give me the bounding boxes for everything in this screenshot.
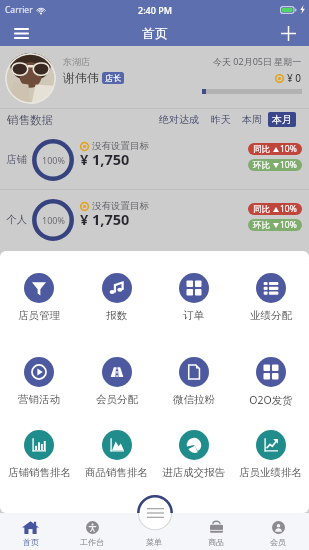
- button[interactable]: 绝对达成: [155, 112, 203, 127]
- button[interactable]: O2O发货: [232, 357, 309, 407]
- staticText: 进店成交报告: [162, 466, 225, 479]
- staticText: 业绩分配: [250, 309, 292, 322]
- staticText: ¥ 1,750: [80, 149, 130, 169]
- staticText: 微信拉粉: [173, 393, 215, 406]
- button[interactable]: 菜单: [123, 513, 185, 550]
- button[interactable]: 同比: [248, 203, 302, 215]
- button[interactable]: 报数: [78, 273, 155, 322]
- staticText: 环比: [253, 220, 270, 231]
- button[interactable]: Menu: [137, 495, 173, 531]
- button[interactable]: 微信拉粉: [155, 357, 232, 406]
- staticText: 10%: [280, 219, 297, 231]
- staticText: 环比: [253, 160, 270, 171]
- staticText: 同比: [253, 144, 270, 155]
- staticText: 店长: [105, 73, 121, 83]
- button[interactable]: 会员分配: [78, 357, 155, 406]
- staticText: 销售数据: [7, 113, 53, 127]
- button[interactable]: 本周: [238, 112, 266, 127]
- button[interactable]: 订单: [155, 273, 232, 322]
- button[interactable]: 会员: [247, 513, 309, 550]
- button[interactable]: Menu: [8, 20, 34, 46]
- staticText: 今天 02月05日 星期一: [213, 55, 302, 67]
- button[interactable]: 店员管理: [0, 273, 78, 322]
- staticText: 10%: [280, 143, 297, 155]
- staticText: O2O发货: [249, 393, 293, 407]
- staticText: 店铺销售排名: [8, 466, 71, 479]
- staticText: 首页: [142, 25, 168, 41]
- staticText: 2:40 PM: [138, 4, 172, 16]
- staticText: 东湖店: [63, 56, 90, 67]
- staticText: 会员: [270, 537, 286, 547]
- button[interactable]: 业绩分配: [232, 273, 309, 322]
- button[interactable]: 首页: [0, 513, 61, 550]
- button[interactable]: 工作台: [61, 513, 123, 550]
- staticText: 店员业绩排名: [239, 466, 302, 479]
- staticText: 订单: [183, 309, 204, 322]
- staticText: Carrier: [5, 4, 33, 16]
- button[interactable]: 环比: [248, 219, 302, 231]
- staticText: 10%: [280, 159, 297, 171]
- staticText: 没有设置目标: [92, 200, 149, 212]
- staticText: 同比: [253, 204, 270, 215]
- staticText: 营销活动: [18, 393, 60, 406]
- button[interactable]: 店铺销售排名: [0, 430, 78, 479]
- staticText: 100%: [42, 154, 65, 166]
- staticText: 商品销售排名: [85, 466, 148, 479]
- staticText: 会员分配: [96, 393, 138, 406]
- button[interactable]: 商品销售排名: [78, 430, 155, 479]
- staticText: 商品: [208, 537, 224, 547]
- button[interactable]: 环比: [248, 159, 302, 171]
- staticText: 100%: [42, 214, 65, 226]
- staticText: 工作台: [80, 537, 104, 547]
- staticText: 本周: [242, 113, 262, 126]
- button[interactable]: 营销活动: [0, 357, 78, 406]
- staticText: 绝对达成: [159, 113, 199, 126]
- button[interactable]: 同比: [248, 143, 302, 155]
- button[interactable]: 店员业绩排名: [232, 430, 309, 479]
- staticText: 店铺: [6, 153, 27, 166]
- button[interactable]: Profile photo: [5, 53, 56, 104]
- staticText: 个人: [6, 213, 27, 226]
- staticText: 谢伟伟: [63, 70, 99, 85]
- staticText: 昨天: [211, 113, 231, 126]
- button[interactable]: 本月: [268, 112, 296, 127]
- staticText: ¥ 1,750: [80, 209, 130, 229]
- button[interactable]: Add: [275, 20, 301, 46]
- staticText: 10%: [280, 203, 297, 215]
- staticText: 店员管理: [18, 309, 60, 322]
- button[interactable]: 商品: [185, 513, 247, 550]
- button[interactable]: 进店成交报告: [155, 430, 232, 479]
- staticText: 首页: [23, 537, 39, 547]
- staticText: 菜单: [146, 537, 162, 547]
- staticText: ¥ 0: [287, 71, 302, 85]
- staticText: 本月: [272, 113, 292, 126]
- staticText: 报数: [106, 309, 127, 322]
- staticText: 没有设置目标: [92, 140, 149, 152]
- button[interactable]: 昨天: [207, 112, 235, 127]
